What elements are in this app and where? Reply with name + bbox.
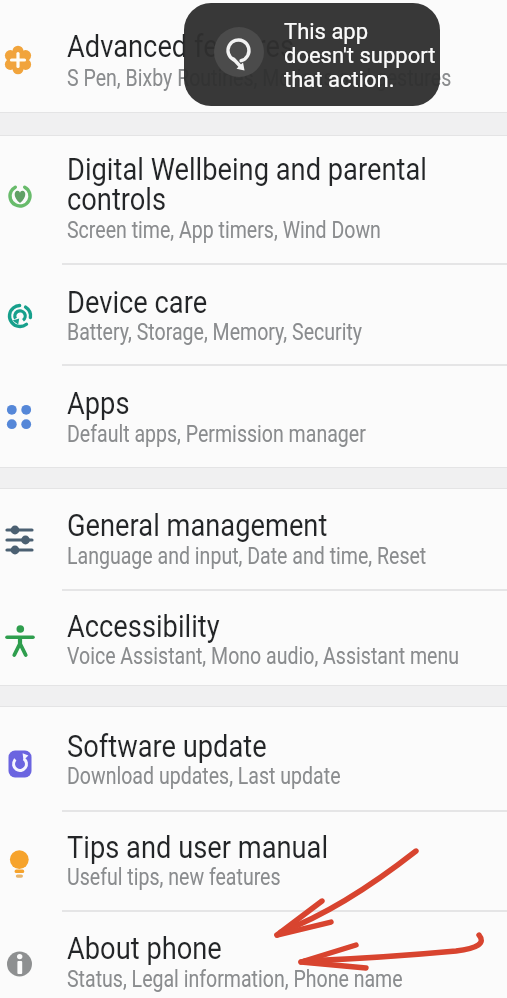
staticText: Default apps, Permission manager	[67, 421, 366, 448]
staticText: Download updates, Last update	[67, 763, 341, 790]
staticText: Useful tips, new features	[67, 864, 281, 891]
staticText: Tips and user manual	[67, 829, 328, 865]
staticText: Digital Wellbeing and parental controls	[67, 151, 427, 217]
button[interactable]: About phone	[0, 912, 507, 998]
button[interactable]: Tips and user manual	[0, 812, 507, 912]
staticText: S Pen, Bixby Routines, Motions and gestu…	[67, 65, 452, 92]
staticText: Battery, Storage, Memory, Security	[67, 319, 363, 346]
staticText: Language and input, Date and time, Reset	[67, 543, 427, 570]
button[interactable]: Accessibility	[0, 591, 507, 685]
button[interactable]: Advanced features	[0, 0, 507, 112]
button[interactable]: Software update	[0, 707, 507, 812]
staticText: Software update	[67, 728, 267, 764]
button[interactable]: Digital Wellbeing and parental controls	[0, 136, 507, 265]
staticText: Advanced features	[67, 28, 294, 64]
staticText: This app doesn't support that action.	[284, 19, 436, 92]
button[interactable]: General management	[0, 489, 507, 591]
button[interactable]: Device care	[0, 265, 507, 366]
staticText: Accessibility	[67, 608, 220, 644]
staticText: Voice Assistant, Mono audio, Assistant m…	[67, 643, 460, 670]
staticText: About phone	[67, 930, 222, 966]
staticText: Screen time, App timers, Wind Down	[67, 217, 381, 244]
button[interactable]: Apps	[0, 366, 507, 467]
staticText: Device care	[67, 284, 208, 320]
staticText: Apps	[67, 385, 130, 421]
staticText: Status, Legal information, Phone name	[67, 966, 403, 993]
staticText: General management	[67, 507, 327, 543]
